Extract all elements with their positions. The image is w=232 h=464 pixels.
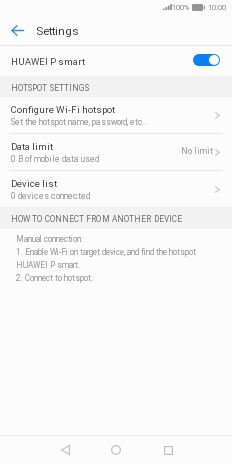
staticText: 100% [172,3,189,12]
staticText: Data limit [11,141,53,152]
staticText: 0 B of mobile data used [11,154,99,164]
button[interactable]: Recents [155,437,181,463]
staticText: 1. Enable Wi-Fi on target device, and fi… [16,247,196,257]
button[interactable]: Configure Wi-Fi hotspot [0,97,232,133]
staticText: HUAWEI P smart. [16,260,80,270]
staticText: Manual connection: [16,234,83,244]
staticText: 2. Connect to hotspot. [16,273,93,283]
button[interactable]: Device list [0,171,232,207]
staticText: HOTSPOT SETTINGS [11,83,89,93]
staticText: Device list [11,178,57,189]
button[interactable]: Toggle hotspot [193,54,220,66]
staticText: Set the hotspot name, password, etc. [11,117,145,127]
staticText: 0 devices connected [11,191,90,201]
staticText: 10:00 [208,3,226,12]
staticText: No limit [181,146,213,156]
button[interactable]: HUAWEI P smart [0,46,232,76]
staticText: HUAWEI P smart [11,56,85,67]
button[interactable]: Data limit [0,134,232,170]
staticText: HOW TO CONNECT FROM ANOTHER DEVICE [11,214,183,224]
staticText: Configure Wi-Fi hotspot [11,104,115,115]
button[interactable]: Home [103,437,129,463]
button[interactable]: Back [0,16,34,45]
button[interactable]: Back [52,437,78,463]
staticText: Settings [36,24,79,37]
